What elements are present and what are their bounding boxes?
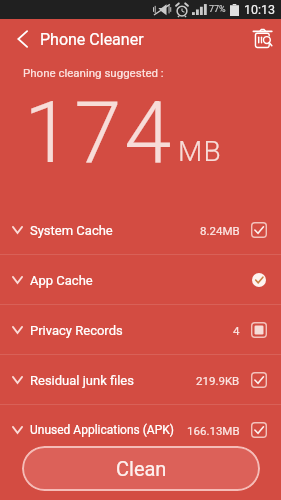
staticText: 174 bbox=[24, 83, 175, 183]
button[interactable]: Unused Applications (APK) bbox=[0, 405, 281, 455]
button[interactable]: Privacy Records bbox=[0, 305, 281, 355]
staticText: 219.9KB bbox=[196, 374, 240, 387]
staticText: App Cache bbox=[30, 273, 93, 288]
staticText: Privacy Records bbox=[30, 323, 123, 338]
staticText: Phone Cleaner bbox=[40, 30, 144, 49]
staticText: MB bbox=[178, 135, 222, 168]
button[interactable]: Toggle selection bbox=[249, 270, 269, 290]
staticText: Phone cleaning suggested : bbox=[23, 66, 164, 79]
button[interactable]: Toggle selection bbox=[249, 420, 269, 440]
staticText: System Cache bbox=[30, 223, 113, 238]
staticText: Unused Applications (APK) bbox=[30, 423, 174, 437]
staticText: 77% bbox=[209, 4, 226, 15]
button[interactable]: Back bbox=[0, 19, 41, 57]
button[interactable]: Toggle selection bbox=[249, 320, 269, 340]
button[interactable]: Clean bbox=[22, 446, 260, 491]
staticText: Clean bbox=[116, 457, 167, 480]
staticText: 166.13MB bbox=[187, 424, 240, 437]
staticText: 10:13 bbox=[244, 2, 276, 17]
staticText: 8.24MB bbox=[200, 224, 240, 237]
button[interactable]: App Cache bbox=[0, 255, 281, 305]
staticText: 4 bbox=[233, 324, 240, 337]
button[interactable]: Residual junk files bbox=[0, 355, 281, 405]
staticText: Residual junk files bbox=[30, 373, 134, 388]
button[interactable]: Deep clean bbox=[243, 19, 281, 57]
button[interactable]: System Cache bbox=[0, 205, 281, 255]
button[interactable]: Toggle selection bbox=[249, 370, 269, 390]
button[interactable]: Toggle selection bbox=[249, 220, 269, 240]
